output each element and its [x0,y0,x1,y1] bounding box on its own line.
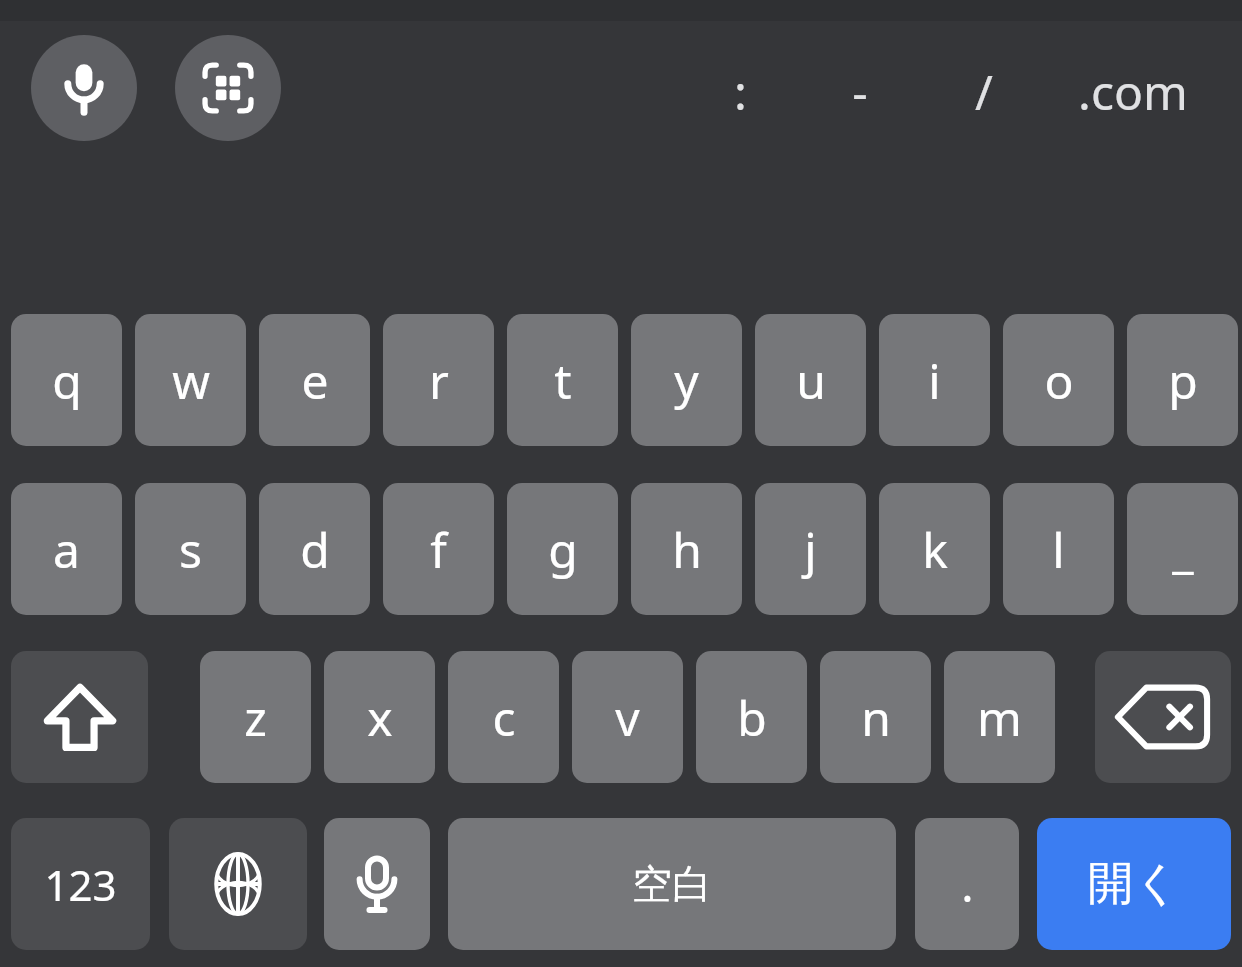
staticText: f [430,517,447,582]
staticText: l [1052,517,1065,582]
staticText: 開く [1087,855,1181,913]
button[interactable]: Numbers and symbols [11,818,150,950]
staticText: p [1168,348,1198,413]
button[interactable]: _ [1127,483,1238,615]
button[interactable]: Backspace [1095,651,1231,783]
button[interactable]: Voice input [31,35,137,141]
staticText: c [492,685,516,750]
staticText: i [928,348,941,413]
button[interactable]: w [135,314,246,446]
staticText: e [301,348,329,413]
staticText: v [615,685,640,750]
button[interactable]: .com [1040,48,1226,134]
button[interactable]: Shift [11,651,148,783]
staticText: n [861,685,891,750]
button[interactable]: - [814,48,906,134]
staticText: a [53,517,80,582]
staticText: t [554,348,572,413]
button[interactable]: j [755,483,866,615]
staticText: b [737,685,767,750]
button[interactable]: d [259,483,370,615]
staticText: k [922,517,948,582]
button[interactable]: n [820,651,931,783]
button[interactable]: Space [448,818,896,950]
staticText: x [367,685,393,750]
staticText: 空白 [632,859,712,909]
button[interactable]: q [11,314,122,446]
button[interactable]: v [572,651,683,783]
button[interactable]: x [324,651,435,783]
staticText: o [1044,348,1074,413]
button[interactable]: c [448,651,559,783]
staticText: h [672,517,702,582]
staticText: s [179,517,202,582]
button[interactable]: z [200,651,311,783]
button[interactable]: f [383,483,494,615]
button[interactable]: Voice typing [324,818,430,950]
staticText: _ [1172,517,1194,582]
button[interactable]: h [631,483,742,615]
button[interactable]: Change keyboard language [169,818,307,950]
staticText: r [429,348,449,413]
staticText: q [52,348,82,413]
button[interactable]: y [631,314,742,446]
staticText: m [977,685,1022,750]
button[interactable]: b [696,651,807,783]
button[interactable]: i [879,314,990,446]
button[interactable]: Scan code [175,35,281,141]
button[interactable]: m [944,651,1055,783]
button[interactable]: . [915,818,1019,950]
staticText: y [674,348,699,413]
button[interactable]: o [1003,314,1114,446]
staticText: j [804,517,817,582]
button[interactable]: a [11,483,122,615]
staticText: / [975,59,993,124]
button[interactable]: e [259,314,370,446]
staticText: .com [1078,59,1188,124]
staticText: w [172,348,210,413]
button[interactable]: / [938,48,1030,134]
button[interactable]: u [755,314,866,446]
button[interactable]: s [135,483,246,615]
button[interactable]: k [879,483,990,615]
staticText: 123 [44,856,117,913]
button[interactable]: t [507,314,618,446]
staticText: z [244,685,267,750]
staticText: : [734,59,747,124]
staticText: . [961,853,974,916]
button[interactable]: l [1003,483,1114,615]
staticText: - [852,59,868,124]
staticText: d [300,517,330,582]
button[interactable]: p [1127,314,1238,446]
button[interactable]: : [694,48,786,134]
button[interactable]: r [383,314,494,446]
button[interactable]: Open [1037,818,1231,950]
button[interactable]: g [507,483,618,615]
staticText: g [548,517,578,582]
staticText: u [796,348,826,413]
